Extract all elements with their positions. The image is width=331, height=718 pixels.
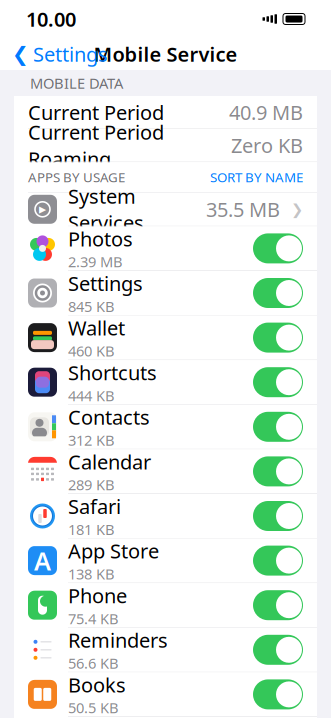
- staticText: SORT BY NAME: [210, 168, 303, 186]
- staticText: 35.5 MB: [206, 196, 280, 223]
- staticText: Settings: [68, 270, 143, 297]
- staticText: Music: [68, 716, 123, 718]
- staticText: Contacts: [68, 404, 150, 430]
- staticText: 444 KB: [68, 386, 115, 405]
- button[interactable]: Photos: [14, 226, 317, 270]
- button[interactable]: Settings: [14, 271, 317, 315]
- staticText: ❯: [291, 201, 303, 218]
- staticText: 460 KB: [68, 341, 115, 361]
- button[interactable]: Safari: [14, 494, 317, 538]
- staticText: 181 KB: [68, 519, 115, 539]
- staticText: A: [34, 544, 51, 577]
- staticText: 2.39 MB: [68, 252, 123, 271]
- staticText: 75.4 KB: [68, 609, 119, 628]
- staticText: MOBILE DATA: [30, 73, 123, 93]
- staticText: App Store: [68, 538, 159, 564]
- staticText: 138 KB: [68, 564, 115, 584]
- staticText: Current Period: [28, 99, 164, 126]
- button[interactable]: Reminders: [14, 628, 317, 672]
- button[interactable]: Shortcuts: [14, 360, 317, 404]
- staticText: 845 KB: [68, 296, 115, 316]
- staticText: 50.5 KB: [68, 698, 119, 717]
- button[interactable]: Wallet: [14, 316, 317, 360]
- button[interactable]: Contacts: [14, 405, 317, 449]
- staticText: 40.9 MB: [229, 99, 303, 126]
- staticText: Zero KB: [231, 132, 303, 159]
- staticText: 312 KB: [68, 430, 115, 450]
- staticText: Wallet: [68, 315, 125, 341]
- staticText: Calendar: [68, 448, 151, 475]
- staticText: ❮: [12, 43, 29, 65]
- staticText: Books: [68, 671, 126, 698]
- staticText: System Services: [68, 183, 144, 236]
- staticText: Current Period Roaming: [28, 119, 164, 172]
- button[interactable]: Books: [14, 672, 317, 716]
- staticText: Reminders: [68, 627, 168, 653]
- button[interactable]: A: [14, 539, 317, 583]
- staticText: Safari: [68, 493, 121, 520]
- button[interactable]: SORT BY NAME: [200, 162, 303, 192]
- staticText: Mobile Service: [93, 41, 237, 67]
- button[interactable]: Calendar: [14, 449, 317, 493]
- staticText: 56.6 KB: [68, 653, 119, 673]
- staticText: APPS BY USAGE: [28, 168, 125, 186]
- staticText: ▶: [39, 204, 46, 215]
- button[interactable]: ▶: [14, 193, 317, 226]
- staticText: Photos: [68, 225, 133, 252]
- staticText: Shortcuts: [68, 359, 157, 386]
- button[interactable]: ❮: [0, 38, 120, 70]
- staticText: 10.00: [26, 6, 76, 32]
- staticText: Phone: [68, 582, 127, 609]
- staticText: 289 KB: [68, 475, 115, 494]
- button[interactable]: Phone: [14, 583, 317, 627]
- staticText: Settings: [33, 41, 108, 67]
